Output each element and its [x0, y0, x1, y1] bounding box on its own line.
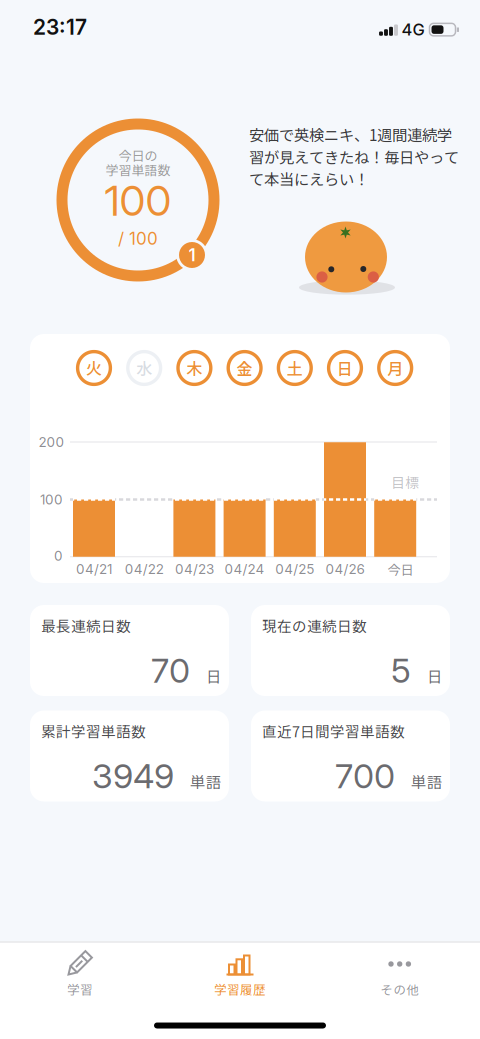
- staticText: その他: [380, 980, 419, 998]
- staticText: 04/26: [325, 561, 364, 577]
- staticText: 5: [391, 650, 411, 691]
- staticText: / 100: [118, 228, 158, 249]
- staticText: 金: [237, 356, 253, 380]
- staticText: 04/22: [125, 561, 164, 577]
- staticText: 23:17: [33, 14, 87, 40]
- staticText: 日: [206, 665, 222, 687]
- staticText: 0: [54, 548, 63, 564]
- staticText: 100: [40, 491, 63, 508]
- button[interactable]: その他: [340, 942, 460, 1000]
- staticText: 4G: [401, 19, 424, 39]
- staticText: 04/24: [225, 561, 265, 577]
- staticText: 日: [337, 356, 353, 380]
- staticText: 累計学習単語数: [41, 720, 146, 741]
- staticText: 100: [104, 175, 171, 226]
- staticText: 安価で英検ニキ、1週間連続学 習が見えてきたね！毎日やって て本当にえらい！: [249, 123, 459, 190]
- staticText: 学習単語数: [105, 160, 170, 179]
- staticText: 日: [427, 665, 443, 687]
- staticText: 1: [188, 245, 195, 265]
- staticText: 3949: [92, 755, 174, 796]
- staticText: 水: [136, 356, 152, 380]
- staticText: 単語: [411, 770, 443, 792]
- staticText: 700: [335, 755, 395, 796]
- staticText: 土: [287, 356, 303, 380]
- staticText: 04/23: [175, 561, 214, 577]
- staticText: 学習履歴: [214, 980, 266, 998]
- staticText: 木: [186, 356, 202, 380]
- staticText: 月: [387, 356, 403, 380]
- staticText: 70: [151, 650, 190, 691]
- staticText: 目標: [391, 472, 419, 492]
- staticText: 200: [38, 434, 64, 450]
- staticText: 直近7日間学習単語数: [262, 720, 405, 741]
- staticText: 単語: [190, 770, 222, 792]
- button[interactable]: 学習: [20, 942, 140, 1000]
- staticText: 04/25: [275, 561, 314, 577]
- staticText: 学習: [67, 980, 93, 998]
- button[interactable]: 学習履歴: [180, 942, 300, 1000]
- staticText: 今日: [387, 560, 413, 578]
- staticText: 現在の連続日数: [262, 615, 367, 636]
- staticText: 今日の: [118, 146, 157, 164]
- staticText: 火: [86, 356, 102, 380]
- staticText: 最長連続日数: [41, 615, 131, 636]
- staticText: 04/21: [76, 561, 112, 577]
